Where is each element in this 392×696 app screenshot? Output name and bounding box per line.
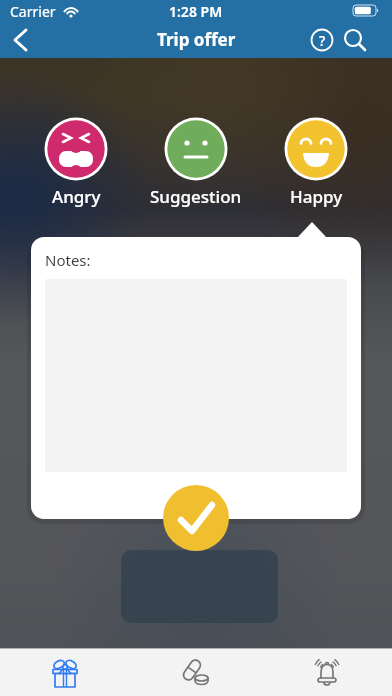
staticText: Carrier: [10, 2, 56, 21]
staticText: 1:28 PM: [169, 2, 223, 21]
staticText: Angry: [52, 185, 101, 208]
button[interactable]: Happy: [261, 117, 371, 208]
button[interactable]: [130, 649, 261, 696]
button[interactable]: [163, 485, 229, 551]
button[interactable]: ?: [308, 26, 336, 54]
staticText: Trip offer: [157, 28, 236, 51]
staticText: ?: [319, 31, 326, 50]
button[interactable]: Suggestion: [141, 117, 251, 208]
button[interactable]: [261, 649, 392, 696]
button[interactable]: [0, 649, 130, 696]
staticText: Happy: [290, 185, 343, 208]
button[interactable]: [341, 26, 369, 54]
button[interactable]: Angry: [21, 117, 131, 208]
button[interactable]: [6, 25, 38, 55]
staticText: Suggestion: [150, 185, 242, 208]
staticText: Notes:: [45, 250, 91, 270]
